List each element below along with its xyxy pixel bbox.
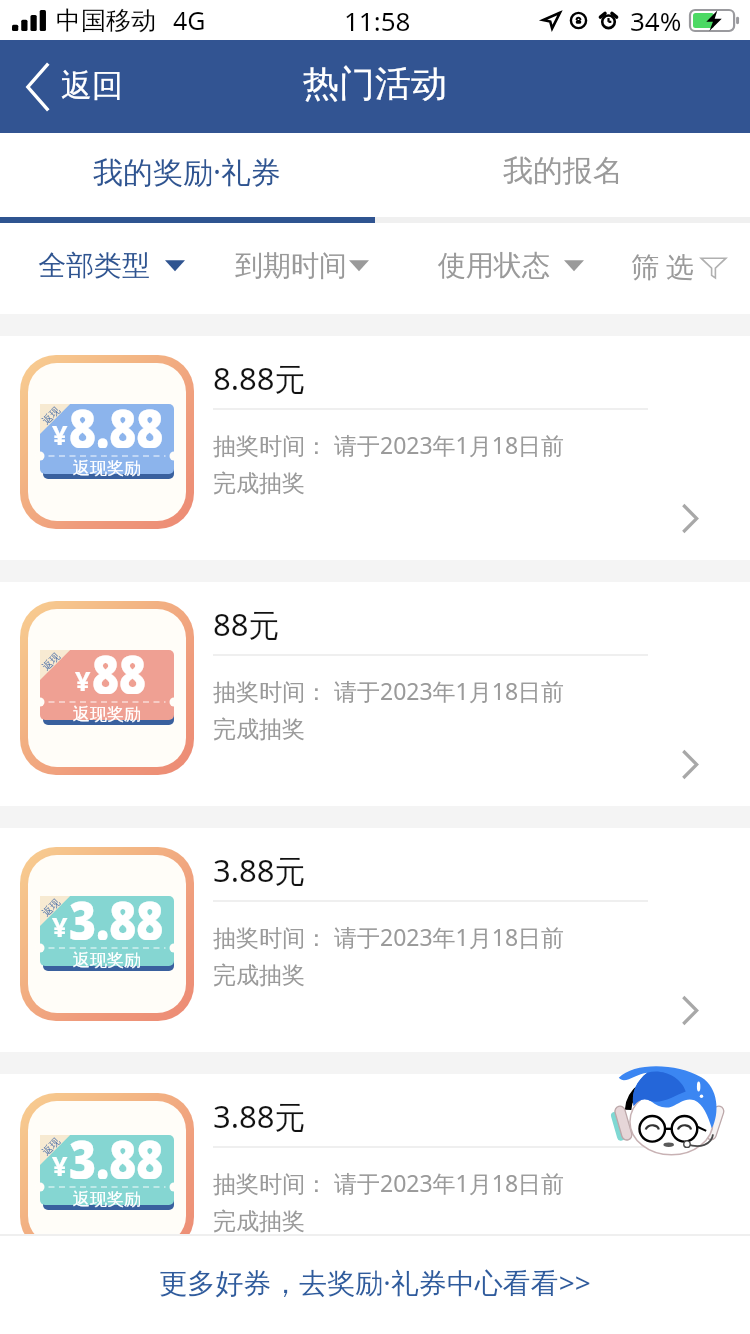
staticText: 返现奖励 <box>73 458 141 479</box>
staticText: 使用状态 <box>438 248 550 283</box>
staticText: 完成抽奖 <box>213 1207 305 1236</box>
other: 查看详情 <box>682 997 698 1024</box>
staticText: 8.88元 <box>213 357 306 399</box>
staticText: 返回 <box>61 66 123 105</box>
staticText: ¥ <box>52 416 68 453</box>
staticText: 热门活动 <box>303 61 447 106</box>
staticText: 筛 选 <box>631 247 695 285</box>
other: 查看详情 <box>682 751 698 778</box>
other: 查看详情 <box>682 505 698 532</box>
staticText: 返现奖励 <box>73 1189 141 1210</box>
staticText: 11:58 <box>344 3 411 38</box>
staticText: 88 <box>92 637 147 694</box>
staticText: 3.88 <box>69 883 164 940</box>
staticText: 完成抽奖 <box>213 961 305 990</box>
button[interactable]: 在线客服 <box>607 1061 731 1163</box>
staticText: 3.88元 <box>213 849 306 891</box>
staticText: 8.88 <box>69 391 164 448</box>
staticText: 3.88 <box>69 1122 164 1179</box>
button[interactable]: 更多好券，去奖励·礼券中心看看>> <box>0 1236 750 1334</box>
button[interactable]: 返现 <box>0 1074 750 1234</box>
staticText: 88元 <box>213 603 280 645</box>
staticText: 抽奖时间： 请于2023年1月18日前 <box>213 1167 565 1198</box>
staticText: 抽奖时间： 请于2023年1月18日前 <box>213 675 565 706</box>
staticText: 返现奖励 <box>73 704 141 725</box>
button[interactable]: 筛 选 <box>617 239 727 293</box>
staticText: 3.88元 <box>213 1095 306 1137</box>
staticText: 全部类型 <box>38 248 150 283</box>
staticText: 返现 <box>39 404 63 427</box>
staticText: ¥ <box>52 908 68 945</box>
staticText: 抽奖时间： 请于2023年1月18日前 <box>213 429 565 460</box>
staticText: 4G <box>173 3 206 37</box>
staticText: 到期时间 <box>235 248 347 283</box>
button[interactable]: 返现 <box>0 828 750 1052</box>
button[interactable]: 到期时间 <box>235 240 369 291</box>
button[interactable]: 使用状态 <box>438 240 584 291</box>
staticText: 抽奖时间： 请于2023年1月18日前 <box>213 921 565 952</box>
staticText: 我的奖励·礼券 <box>93 151 282 192</box>
staticText: 我的报名 <box>503 152 623 190</box>
button[interactable]: 我的报名 <box>375 133 750 217</box>
staticText: 中国移动 <box>56 5 156 36</box>
staticText: 更多好券，去奖励·礼券中心看看>> <box>159 1263 591 1301</box>
button[interactable]: 返现 <box>0 582 750 806</box>
button[interactable]: 返现 <box>0 336 750 560</box>
staticText: 完成抽奖 <box>213 469 305 498</box>
button[interactable]: 全部类型 <box>38 240 185 291</box>
staticText: 返现 <box>39 1135 63 1158</box>
staticText: 返现 <box>39 896 63 919</box>
staticText: 返现奖励 <box>73 950 141 971</box>
staticText: ¥ <box>75 662 91 699</box>
staticText: ¥ <box>52 1147 68 1184</box>
staticText: 返现 <box>39 650 63 673</box>
button[interactable]: 我的奖励·礼券 <box>0 133 375 217</box>
staticText: 完成抽奖 <box>213 715 305 744</box>
staticText: 34% <box>630 3 682 38</box>
button[interactable]: 返回 <box>0 40 147 133</box>
